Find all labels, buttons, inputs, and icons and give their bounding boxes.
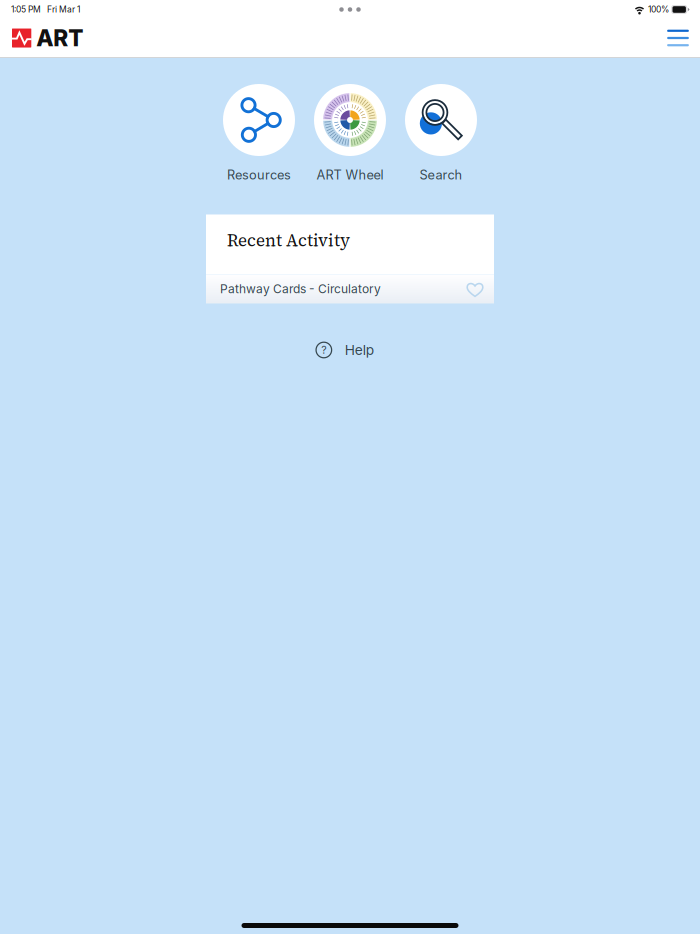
button[interactable]: ? bbox=[305, 334, 395, 365]
button[interactable]: Search bbox=[395, 84, 486, 182]
staticText: ? bbox=[321, 343, 326, 356]
staticText: Help bbox=[345, 342, 374, 358]
staticText: Fri Mar 1 bbox=[41, 4, 80, 15]
staticText: ART Wheel bbox=[316, 167, 383, 182]
staticText: Resources bbox=[227, 167, 291, 182]
staticText: Search bbox=[419, 167, 462, 182]
button[interactable]: Menu bbox=[659, 19, 697, 57]
staticText: Recent Activity bbox=[227, 229, 350, 252]
staticText: 100% bbox=[646, 4, 671, 15]
button[interactable]: ART Wheel bbox=[304, 84, 395, 182]
button[interactable]: Pathway Cards - Circulatory bbox=[206, 274, 494, 303]
staticText: 1:05 PM bbox=[11, 4, 41, 15]
staticText: Pathway Cards - Circulatory bbox=[220, 282, 381, 296]
staticText: ART bbox=[36, 24, 83, 52]
button[interactable]: ART bbox=[0, 19, 91, 57]
button[interactable]: Resources bbox=[213, 84, 304, 182]
